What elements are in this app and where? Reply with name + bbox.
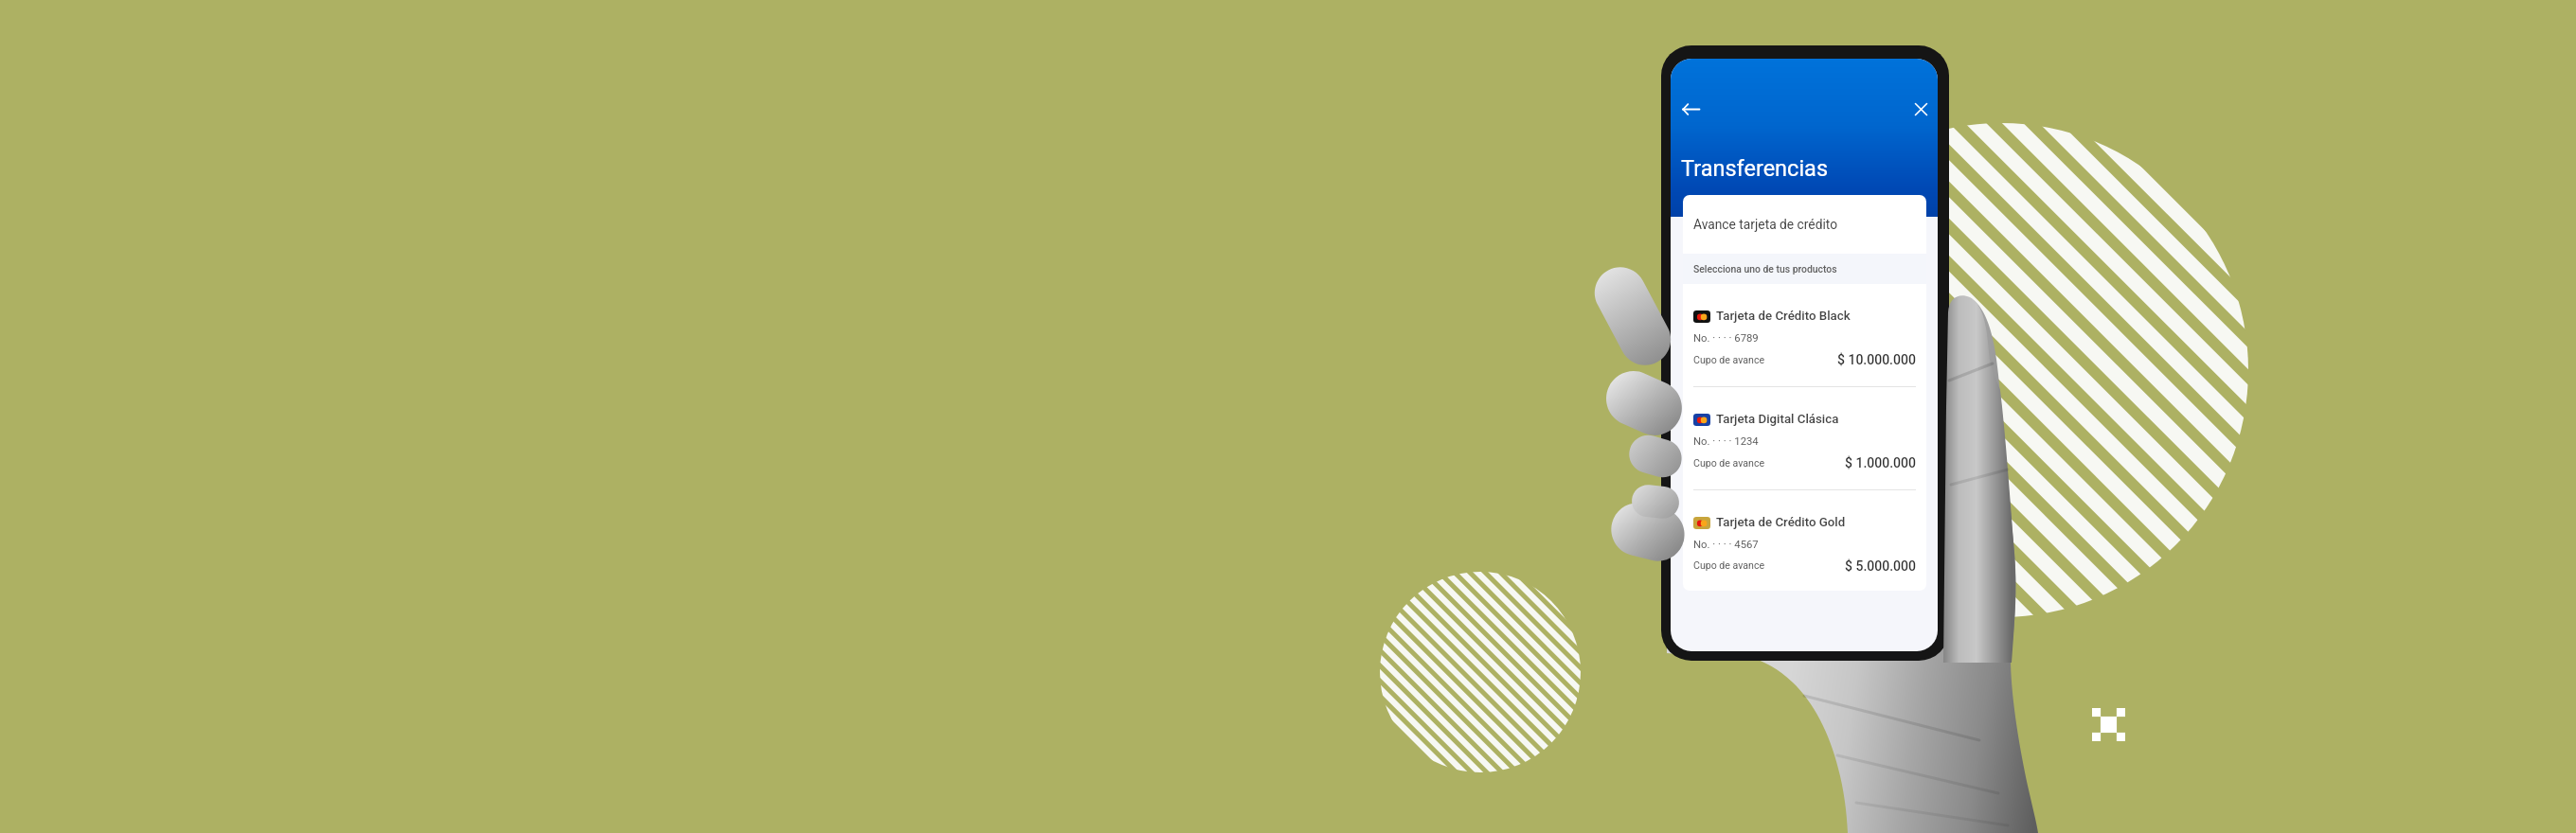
staticText: Cupo de avance — [1693, 457, 1765, 469]
staticText: No. · · · · 4567 — [1693, 539, 1759, 551]
staticText: No. · · · · 6789 — [1693, 332, 1759, 345]
staticText: No. · · · · 1234 — [1693, 435, 1759, 448]
staticText: $ 5.000.000 — [1845, 558, 1916, 572]
staticText: $ 1.000.000 — [1845, 455, 1916, 470]
staticText: Cupo de avance — [1693, 559, 1765, 571]
button[interactable]: Close — [1906, 95, 1935, 123]
button[interactable]: Back — [1676, 95, 1705, 123]
staticText: Transferencias — [1681, 155, 1829, 182]
staticText: Tarjeta Digital Clásica — [1716, 412, 1839, 427]
staticText: Selecciona uno de tus productos — [1693, 263, 1837, 275]
staticText: Avance tarjeta de crédito — [1693, 217, 1838, 232]
button[interactable]: Tarjeta de Crédito Black — [1683, 284, 1926, 386]
button[interactable]: Tarjeta de Crédito Gold — [1683, 490, 1926, 591]
button[interactable]: Tarjeta Digital Clásica — [1683, 387, 1926, 489]
staticText: $ 10.000.000 — [1837, 352, 1916, 367]
staticText: Tarjeta de Crédito Gold — [1716, 515, 1846, 530]
staticText: Tarjeta de Crédito Black — [1716, 309, 1851, 324]
staticText: Cupo de avance — [1693, 354, 1765, 365]
